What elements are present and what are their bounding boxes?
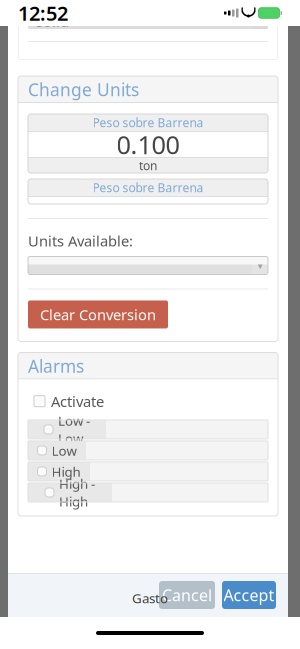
staticText: Peso sobre Barrena [92,179,203,195]
staticText: Clear Conversion [40,305,156,324]
button[interactable]: Low [28,441,268,460]
staticText: Low [51,442,76,459]
staticText: 0.100 [116,128,179,161]
button[interactable]: High [28,462,268,481]
staticText: Cancel [162,584,212,606]
button[interactable]: Units Available [28,256,268,274]
staticText: Accept [223,584,274,606]
button[interactable]: Clear Conversion [28,300,168,328]
staticText: ▾ [257,15,262,27]
staticText: Alarms [28,354,84,377]
staticText: Change Units [28,78,139,101]
staticText: ▾ [257,259,262,271]
staticText: solid [36,11,69,31]
staticText: Gasto [132,589,168,607]
button[interactable]: Low - Low [28,420,268,439]
button[interactable]: High - High [28,483,268,502]
staticText: ton [139,157,157,173]
button[interactable]: Accept [222,581,276,609]
staticText: Units Available: [28,231,133,250]
button[interactable]: Cancel [159,581,215,609]
staticText: Activate [51,391,104,411]
button[interactable]: Activate [34,391,104,411]
staticText: High - High [59,475,95,510]
staticText: Low - Low [58,412,90,447]
staticText: High [51,463,80,480]
staticText: Peso sobre Barrena [92,114,203,130]
staticText: 12:52 [18,0,68,26]
